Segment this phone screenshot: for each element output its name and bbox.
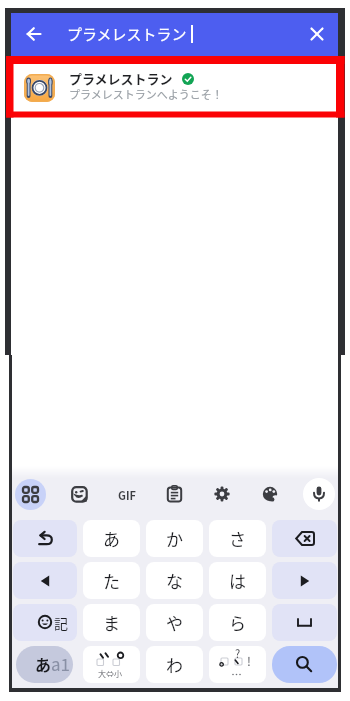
staticText: あ <box>35 652 52 675</box>
staticText: プラメレストラン <box>69 69 173 88</box>
staticText: か <box>166 526 183 551</box>
button[interactable]: ら <box>209 604 266 641</box>
staticText: 大⇔小 <box>98 668 122 680</box>
button[interactable]: や <box>146 604 203 641</box>
staticText: た <box>103 568 120 593</box>
button[interactable]: 記 <box>13 604 77 641</box>
button[interactable] <box>311 28 323 40</box>
staticText: ! <box>247 652 251 669</box>
button[interactable] <box>214 486 230 502</box>
staticText: ら <box>229 610 246 635</box>
button[interactable] <box>272 520 337 557</box>
staticText: GIF <box>118 487 136 503</box>
staticText: ? <box>235 645 241 661</box>
button[interactable] <box>71 486 88 503</box>
staticText: 記 <box>54 613 68 633</box>
staticText: ま <box>103 610 120 635</box>
staticText: な <box>166 568 183 593</box>
button[interactable] <box>272 604 337 641</box>
button[interactable]: た <box>83 562 140 599</box>
button[interactable] <box>15 479 46 510</box>
staticText: プラメレストランへようこそ！ <box>69 86 223 102</box>
button[interactable]: は <box>209 562 266 599</box>
staticText: プラメレストラン <box>67 23 187 45</box>
staticText: さ <box>229 526 246 551</box>
button[interactable] <box>13 520 77 557</box>
button[interactable] <box>13 562 77 599</box>
button[interactable]: わ <box>146 646 203 683</box>
staticText: わ <box>166 652 183 677</box>
staticText: や <box>166 610 183 635</box>
staticText: あ <box>103 526 120 551</box>
button[interactable] <box>272 562 337 599</box>
button[interactable] <box>262 486 278 502</box>
button[interactable] <box>272 646 337 683</box>
button[interactable] <box>11 13 338 56</box>
button[interactable]: ? <box>209 646 266 683</box>
button[interactable]: ま <box>83 604 140 641</box>
button[interactable] <box>11 56 338 117</box>
staticText: は <box>229 568 246 593</box>
button[interactable] <box>166 485 183 502</box>
button[interactable]: あ <box>83 520 140 557</box>
staticText: a1 <box>51 651 71 676</box>
button[interactable] <box>27 27 41 41</box>
button[interactable]: さ <box>209 520 266 557</box>
button[interactable]: あ <box>16 646 73 683</box>
button[interactable]: か <box>146 520 203 557</box>
button[interactable] <box>303 478 335 510</box>
button[interactable]: な <box>146 562 203 599</box>
button[interactable]: 大⇔小 <box>83 646 140 683</box>
